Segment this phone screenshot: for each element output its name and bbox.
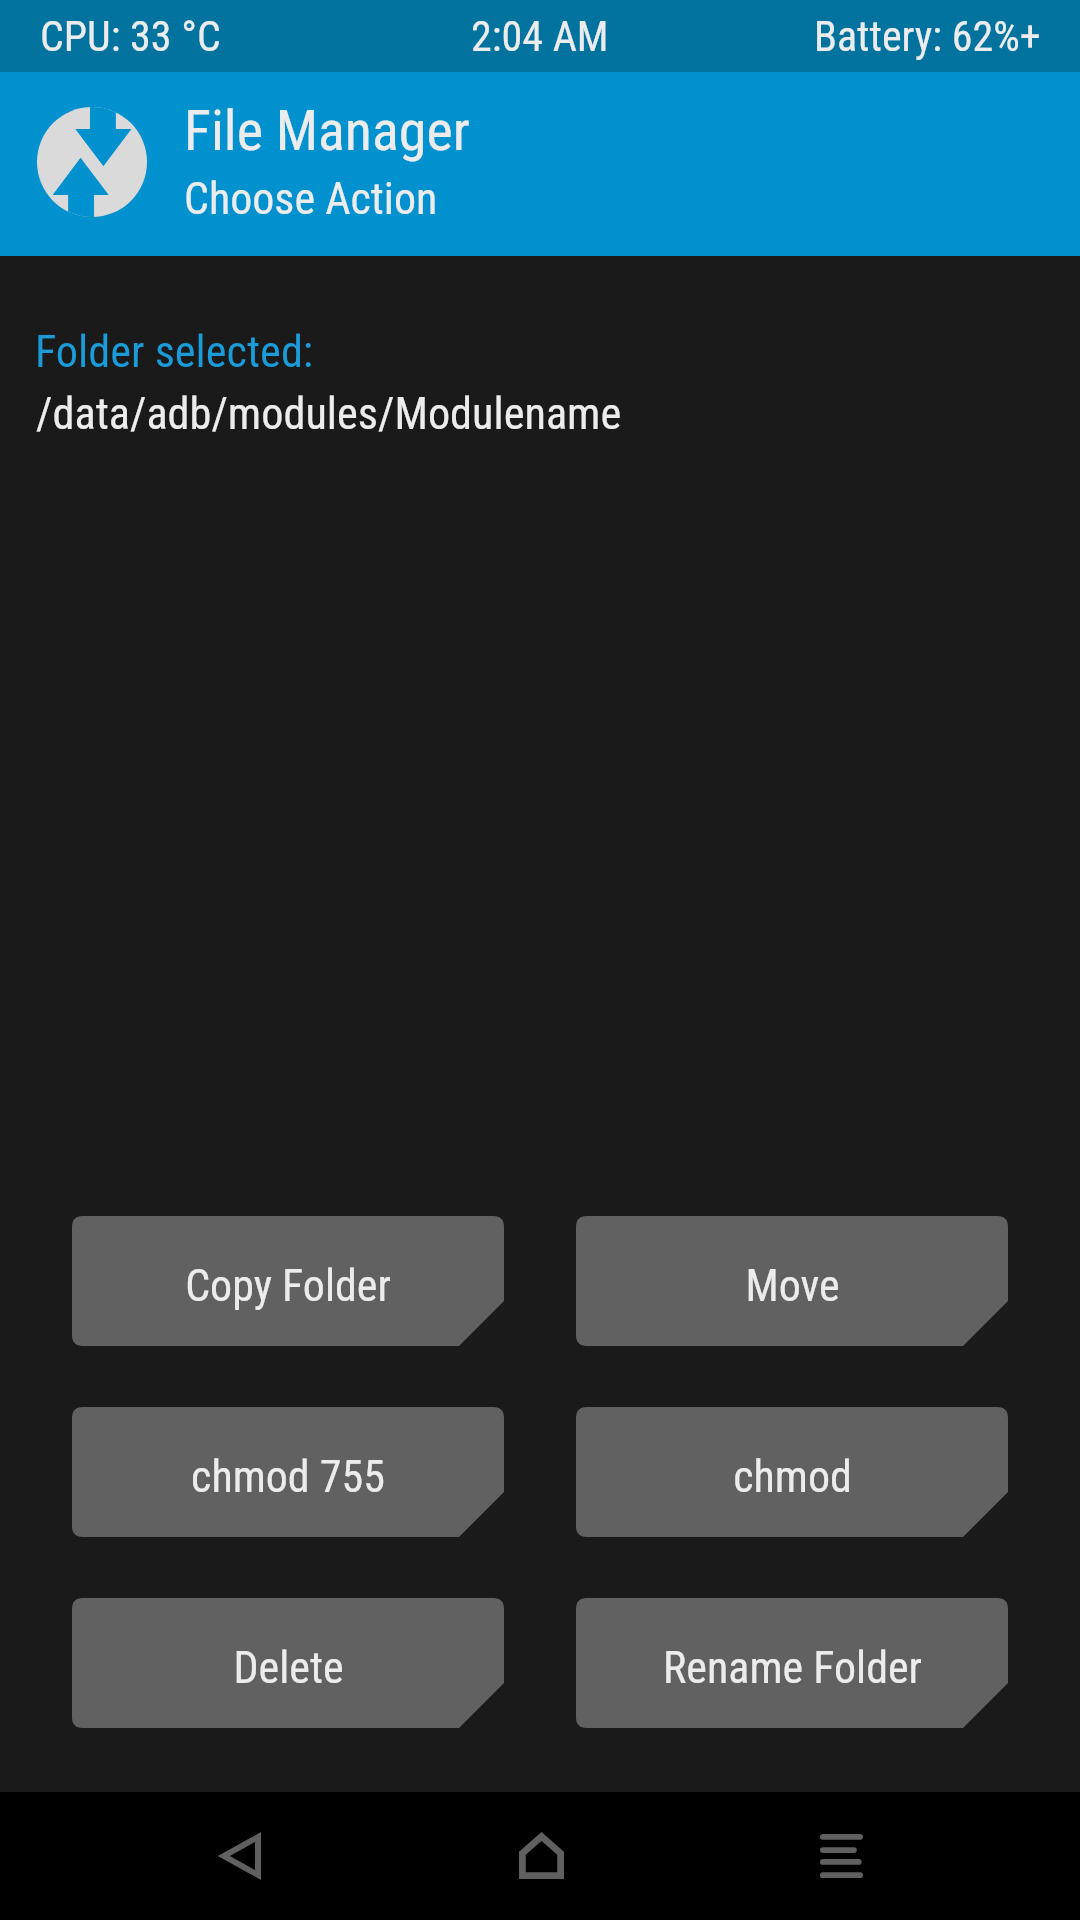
button[interactable]: chmod <box>576 1407 1008 1537</box>
staticText: chmod <box>733 1451 852 1503</box>
staticText: Copy Folder <box>185 1260 391 1312</box>
staticText: CPU: 33 °C <box>40 12 221 61</box>
staticText: File Manager <box>184 98 470 164</box>
button[interactable]: Back <box>151 1792 331 1920</box>
staticText: Folder selected: <box>35 326 314 378</box>
staticText: Delete <box>233 1642 344 1694</box>
button[interactable]: Rename Folder <box>576 1598 1008 1728</box>
staticText: Choose Action <box>184 173 438 225</box>
staticText: /data/adb/modules/Modulename <box>36 388 622 440</box>
staticText: 2:04 AM <box>471 12 609 61</box>
staticText: Battery: 62%+ <box>814 12 1041 61</box>
staticText: Move <box>745 1260 840 1312</box>
button[interactable]: Home <box>451 1792 631 1920</box>
button[interactable]: Delete <box>72 1598 504 1728</box>
button[interactable]: Move <box>576 1216 1008 1346</box>
staticText: chmod 755 <box>191 1451 385 1503</box>
button[interactable]: chmod 755 <box>72 1407 504 1537</box>
button[interactable]: Recent apps <box>751 1792 931 1920</box>
button[interactable]: Copy Folder <box>72 1216 504 1346</box>
staticText: Rename Folder <box>663 1642 922 1694</box>
